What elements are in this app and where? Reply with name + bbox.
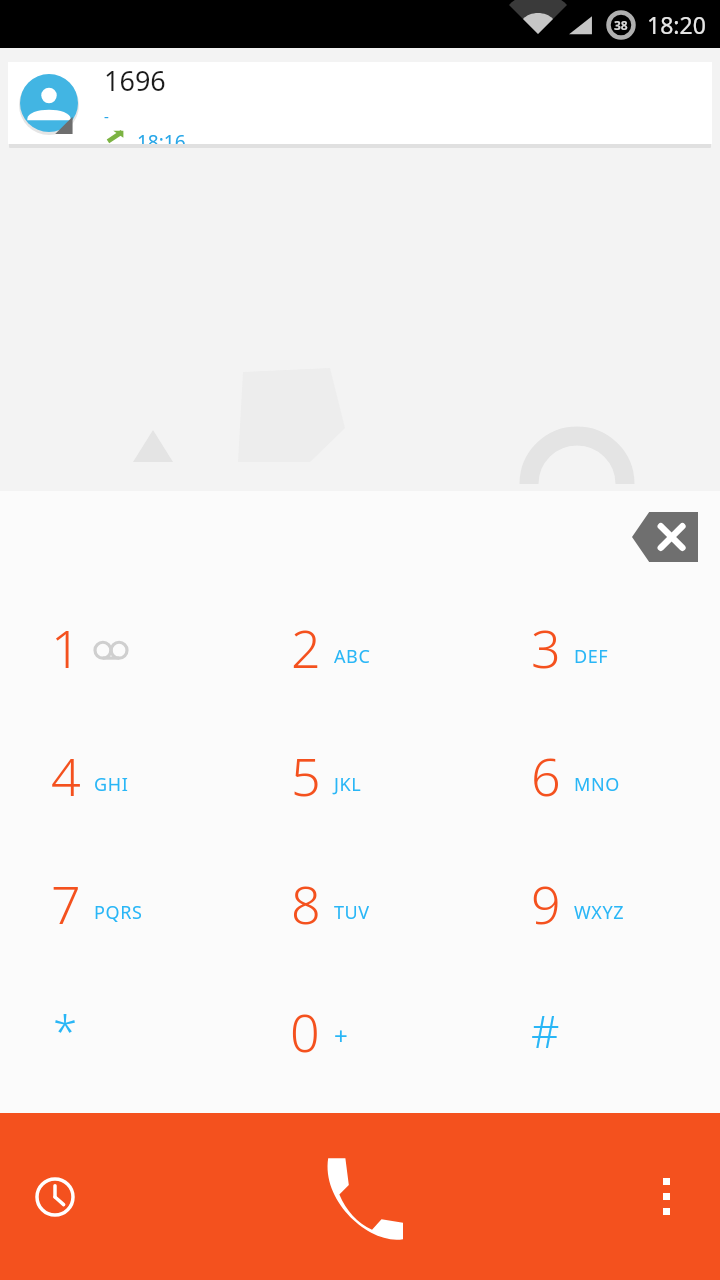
button[interactable]: 2 [240,583,480,711]
button[interactable]: 3 [480,583,720,711]
staticText: * [53,1001,78,1061]
button[interactable]: Backspace [632,510,698,564]
staticText: 18:16 [137,129,186,144]
staticText: PQRS [94,900,143,925]
staticText: 9 [531,868,561,939]
button[interactable]: 1696 [8,62,712,144]
staticText: # [531,1001,560,1061]
button[interactable]: More options [480,1113,720,1280]
staticText: DEF [574,644,609,669]
button[interactable]: 6 [480,711,720,839]
staticText: WXYZ [574,900,625,925]
staticText: + [334,1019,349,1052]
button[interactable]: 7 [0,839,240,967]
staticText: 5 [291,740,321,811]
button[interactable]: 8 [240,839,480,967]
staticText: 38 [614,17,628,33]
staticText: 8 [291,868,321,939]
staticText: MNO [574,772,620,797]
staticText: 2 [291,612,321,683]
staticText: GHI [94,772,129,797]
staticText: 1 [51,612,81,683]
staticText: 0 [290,996,320,1067]
staticText: 3 [531,612,561,683]
button[interactable]: 5 [240,711,480,839]
button[interactable]: 0 [240,967,480,1095]
staticText: - [104,106,109,126]
staticText: 6 [531,740,561,811]
button[interactable]: 4 [0,711,240,839]
staticText: 18:20 [647,9,706,40]
button[interactable]: 1 [0,583,240,711]
button[interactable]: 9 [480,839,720,967]
staticText: ABC [334,644,371,669]
staticText: 4 [51,740,81,811]
button[interactable]: * [0,967,240,1095]
button[interactable]: # [480,967,720,1095]
staticText: TUV [334,900,370,925]
staticText: 7 [51,868,81,939]
button[interactable]: Call history [0,1113,240,1280]
staticText: 1696 [104,62,166,99]
staticText: JKL [334,772,362,797]
button[interactable]: Call [240,1113,480,1280]
